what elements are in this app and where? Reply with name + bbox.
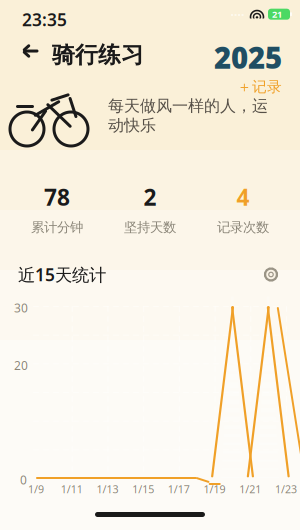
- staticText: 20: [14, 357, 28, 373]
- staticText: 21: [272, 8, 282, 20]
- staticText: 近15天统计: [18, 263, 106, 286]
- staticText: 1/11: [61, 482, 83, 496]
- staticText: 记录次数: [217, 219, 269, 235]
- staticText: 1/15: [132, 482, 154, 496]
- staticText: 1/23: [275, 482, 297, 496]
- staticText: 1/17: [168, 482, 190, 496]
- staticText: 累计分钟: [31, 219, 83, 235]
- staticText: 30: [14, 300, 28, 316]
- staticText: 1/9: [28, 482, 44, 496]
- staticText: 1/19: [204, 482, 226, 496]
- staticText: 0: [20, 472, 27, 488]
- staticText: 坚持天数: [124, 219, 176, 235]
- button[interactable]: 2025: [214, 38, 282, 96]
- staticText: 1/21: [239, 482, 261, 496]
- staticText: ＋记录: [237, 78, 282, 96]
- staticText: 2025: [214, 38, 282, 77]
- button[interactable]: Settings: [260, 263, 282, 285]
- staticText: 4: [236, 182, 249, 212]
- staticText: 1/13: [96, 482, 118, 496]
- staticText: 每天做风一样的人，运动快乐: [108, 96, 268, 135]
- button[interactable]: Back: [18, 38, 44, 64]
- staticText: 骑行练习: [52, 41, 144, 69]
- staticText: 2: [143, 182, 156, 212]
- staticText: 78: [44, 182, 70, 212]
- staticText: 23:35: [22, 8, 67, 31]
